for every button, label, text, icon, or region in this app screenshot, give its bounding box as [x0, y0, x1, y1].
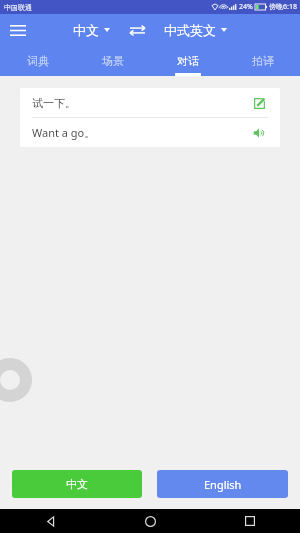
button[interactable]: 词典: [0, 46, 75, 76]
staticText: 词典: [27, 54, 49, 68]
button[interactable]: Menu: [4, 16, 32, 44]
staticText: 中文: [66, 477, 88, 491]
button[interactable]: 试一下。: [20, 88, 280, 117]
button[interactable]: 中文: [69, 18, 114, 42]
button[interactable]: Back: [0, 509, 100, 533]
staticText: 拍译: [252, 54, 274, 68]
button[interactable]: Want a go。: [20, 118, 280, 147]
staticText: Want a go。: [32, 125, 250, 140]
button[interactable]: Swap languages: [126, 19, 148, 41]
button[interactable]: 中式英文: [160, 18, 231, 42]
staticText: 中文: [73, 22, 99, 38]
staticText: 中国联通: [4, 3, 32, 12]
staticText: 场景: [102, 54, 124, 68]
button[interactable]: Home: [100, 509, 200, 533]
button[interactable]: English: [157, 470, 288, 498]
button[interactable]: 中文: [12, 470, 142, 498]
button[interactable]: 对话: [150, 46, 225, 76]
staticText: 24%: [239, 2, 253, 12]
staticText: 试一下。: [32, 96, 250, 110]
staticText: English: [204, 477, 242, 492]
button[interactable]: 场景: [75, 46, 150, 76]
staticText: 中式英文: [164, 22, 216, 38]
button[interactable]: Recent apps: [200, 509, 300, 533]
button[interactable]: Play audio: [250, 124, 268, 142]
staticText: 对话: [177, 54, 199, 68]
button[interactable]: Edit: [250, 94, 268, 112]
button[interactable]: 拍译: [225, 46, 300, 76]
staticText: 傍晚6:18: [269, 2, 297, 12]
